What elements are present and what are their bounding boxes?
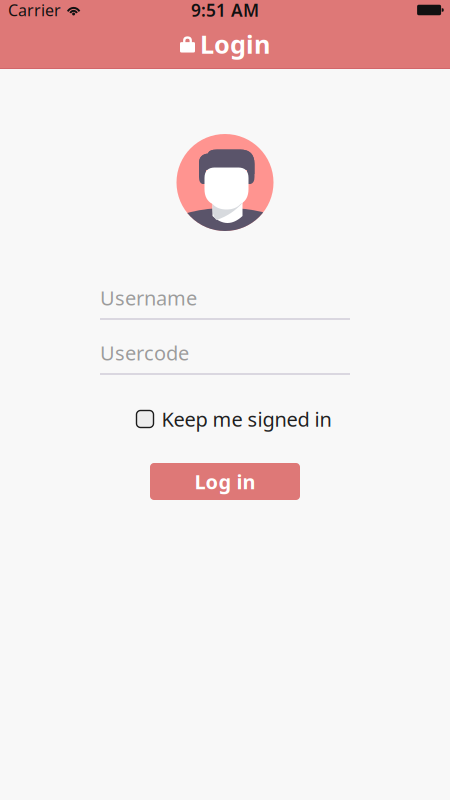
- staticText: Carrier: [8, 0, 61, 21]
- staticText: Keep me signed in: [161, 406, 331, 432]
- staticText: 9:51 AM: [191, 0, 259, 21]
- button[interactable]: Username: [100, 284, 350, 320]
- staticText: Log in: [194, 468, 255, 495]
- staticText: Login: [200, 27, 270, 61]
- button[interactable]: Log in: [150, 463, 300, 500]
- staticText: Usercode: [100, 339, 189, 366]
- button[interactable]: Usercode: [100, 339, 350, 375]
- staticText: Username: [100, 284, 197, 311]
- button[interactable]: Keep me signed in: [127, 408, 322, 430]
